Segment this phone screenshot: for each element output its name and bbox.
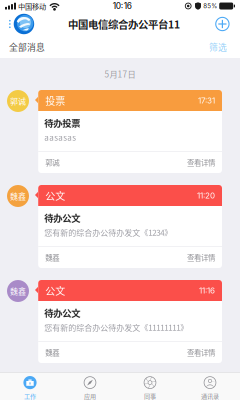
staticText: 公文: [45, 188, 65, 203]
staticText: 待办投票: [44, 116, 80, 129]
staticText: 查看详情: [187, 252, 215, 263]
button[interactable]: 同事: [120, 372, 180, 400]
staticText: 中国电信综合办公平台11: [68, 16, 180, 32]
staticText: 查看详情: [187, 347, 215, 358]
button[interactable]: 魏鑫: [7, 280, 222, 363]
button[interactable]: 应用: [60, 372, 120, 400]
staticText: 17:31: [198, 96, 215, 105]
staticText: 工作: [24, 392, 36, 400]
staticText: 魏鑫: [10, 190, 26, 202]
button[interactable]: 通讯录: [180, 372, 240, 400]
staticText: 魏鑫: [10, 285, 26, 297]
staticText: 5月17日: [104, 68, 135, 80]
staticText: 郭诚: [45, 157, 59, 168]
staticText: 郭诚: [10, 95, 26, 107]
staticText: 投票: [45, 93, 65, 108]
button[interactable]: 筛选: [205, 38, 231, 56]
staticText: 魏鑫: [45, 252, 59, 263]
staticText: 魏鑫: [45, 347, 59, 358]
staticText: 11:20: [197, 191, 215, 200]
staticText: 11:16: [199, 286, 215, 295]
staticText: 应用: [84, 392, 96, 400]
button[interactable]: 工作: [0, 372, 60, 400]
staticText: 85%: [203, 2, 217, 10]
staticText: 待办公文: [44, 306, 80, 319]
button[interactable]: 魏鑫: [7, 185, 222, 268]
button[interactable]: 新建: [208, 12, 237, 36]
staticText: 全部消息: [9, 41, 45, 53]
staticText: 同事: [144, 392, 156, 400]
button[interactable]: 郭诚: [7, 90, 222, 173]
staticText: 通讯录: [201, 392, 219, 400]
staticText: 查看详情: [187, 157, 215, 168]
staticText: aasasas: [44, 131, 76, 143]
staticText: 公文: [45, 283, 65, 298]
button[interactable]: 切换应用: [3, 12, 40, 36]
staticText: 待办公文: [44, 211, 80, 224]
staticText: 10:16: [113, 1, 132, 11]
staticText: 您有新的综合办公待办发文《11111111》: [44, 321, 188, 333]
staticText: 您有新的综合办公待办发文《1234》: [44, 226, 172, 238]
staticText: 筛选: [209, 41, 227, 53]
staticText: 中国移动: [18, 1, 46, 11]
